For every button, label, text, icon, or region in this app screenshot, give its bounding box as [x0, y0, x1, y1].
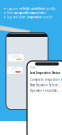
- staticText: New Situation Selection: [30, 83, 60, 87]
- staticText: Operator Consultation Selection: [30, 89, 60, 92]
- staticText: Back: [30, 66, 35, 69]
- staticText: Last Inspection Status: [30, 71, 60, 75]
- button[interactable]: Operator Consultation Selection: [27, 88, 62, 94]
- staticText: Capture vehicle condition quickly: [7, 7, 55, 10]
- button[interactable]: Complete Inspection: [27, 77, 62, 83]
- staticText: Complete Inspection: [30, 78, 60, 81]
- staticText: Find car-specific issues faster: [7, 11, 46, 15]
- staticText: Log and share inspection results: [7, 15, 52, 19]
- button[interactable]: New Situation Selection: [27, 83, 62, 88]
